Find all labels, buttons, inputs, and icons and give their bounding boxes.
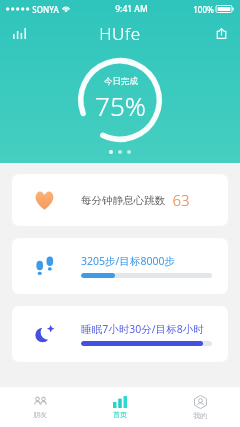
staticText: 9:41 AM	[115, 3, 148, 15]
button[interactable]: Share	[208, 20, 234, 46]
staticText: 每分钟静息心跳数	[81, 194, 165, 207]
staticText: 今日完成	[104, 76, 138, 87]
staticText: SONYA	[32, 4, 59, 15]
button[interactable]: 朋友	[0, 387, 80, 427]
button[interactable]: 首页	[80, 387, 160, 427]
button[interactable]: 睡眠7小时30分/目标8小时	[12, 306, 228, 362]
staticText: 睡眠7小时30分/目标8小时	[81, 322, 204, 336]
staticText: 我的	[193, 411, 207, 420]
button[interactable]: 我的	[160, 387, 240, 427]
staticText: 朋友	[33, 410, 47, 419]
button[interactable]: 每分钟静息心跳数	[12, 174, 228, 226]
staticText: 3205步/目标8000步	[81, 254, 175, 268]
staticText: HUfe	[99, 22, 141, 45]
staticText: 63	[172, 190, 190, 210]
button[interactable]: Statistics	[6, 20, 32, 46]
staticText: 100%	[193, 4, 214, 15]
staticText: 75%	[95, 88, 146, 123]
button[interactable]: 3205步/目标8000步	[12, 238, 228, 294]
staticText: 首页	[113, 410, 127, 419]
